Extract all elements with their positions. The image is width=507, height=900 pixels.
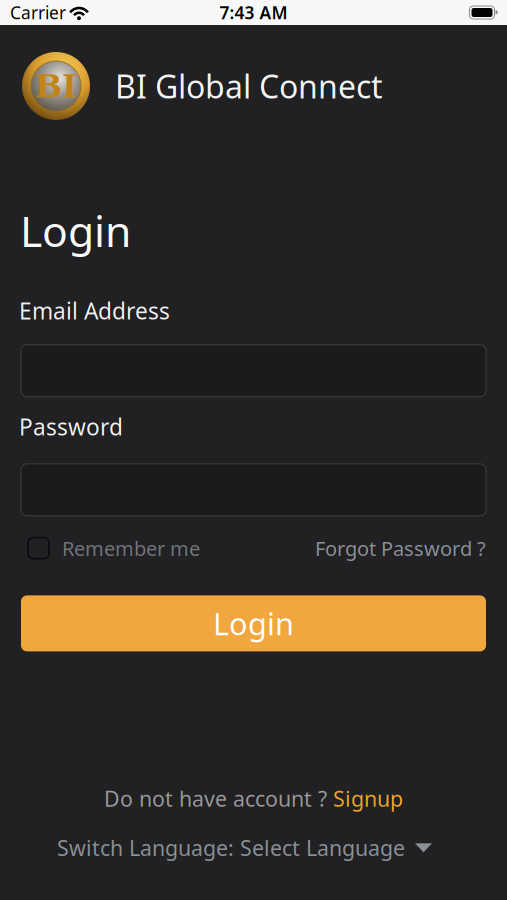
staticText: Carrier: [10, 1, 66, 24]
staticText: Login: [213, 603, 294, 644]
button[interactable]: Forgot Password ?: [315, 535, 486, 561]
staticText: 7:43 AM: [219, 1, 287, 24]
staticText: Password: [19, 412, 123, 442]
staticText: BI: [35, 67, 77, 105]
staticText: Do not have account ?: [104, 784, 333, 813]
button[interactable]: Email Address: [21, 345, 486, 397]
staticText: Forgot Password ?: [315, 535, 486, 561]
button[interactable]: Switch Language: Select Language: [0, 834, 489, 862]
staticText: Login: [20, 202, 131, 259]
staticText: Switch Language: Select Language: [57, 834, 405, 862]
staticText: Signup: [333, 784, 403, 813]
button[interactable]: Remember me: [28, 535, 200, 561]
staticText: Remember me: [62, 535, 200, 561]
button[interactable]: Password: [21, 464, 486, 516]
staticText: Email Address: [19, 296, 170, 326]
button[interactable]: Login: [21, 595, 486, 651]
button[interactable]: Signup: [333, 784, 403, 813]
staticText: BI Global Connect: [115, 65, 383, 107]
